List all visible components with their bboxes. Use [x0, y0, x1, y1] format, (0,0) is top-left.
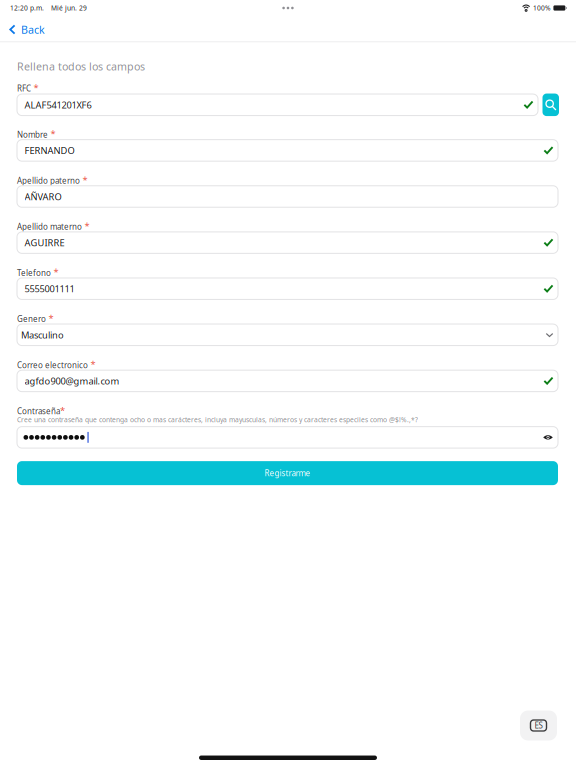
staticText: *: [82, 174, 87, 186]
button[interactable]: AÑVARO: [17, 186, 558, 207]
button[interactable]: agfdo900@gmail.com: [17, 370, 558, 392]
button[interactable]: [17, 427, 558, 448]
staticText: agfdo900@gmail.com: [24, 375, 119, 387]
staticText: Telefono: [17, 267, 51, 278]
staticText: AGUIRRE: [24, 236, 64, 249]
staticText: *: [53, 266, 58, 278]
staticText: Apellido materno: [17, 221, 82, 232]
staticText: Cree una contraseña que contenga ocho o …: [17, 415, 418, 424]
button[interactable]: AGUIRRE: [17, 232, 558, 253]
staticText: Nombre: [17, 129, 48, 140]
staticText: *: [48, 312, 53, 324]
staticText: 100%: [533, 4, 551, 12]
staticText: RFC: [17, 83, 31, 94]
staticText: Back: [21, 22, 45, 37]
staticText: Genero: [17, 314, 46, 324]
staticText: *: [33, 81, 38, 94]
staticText: Registrarme: [264, 468, 310, 478]
button[interactable]: Masculino: [17, 324, 558, 346]
button[interactable]: Cambiar idioma del teclado: [520, 710, 557, 740]
staticText: Apellido paterno: [17, 175, 80, 186]
staticText: Contraseña: [17, 406, 60, 416]
button[interactable]: FERNANDO: [17, 140, 558, 161]
button[interactable]: ALAF541201XF6: [17, 94, 538, 116]
staticText: ES: [534, 720, 542, 731]
staticText: *: [50, 127, 55, 140]
staticText: Mié jun. 29: [51, 4, 87, 12]
button[interactable]: Back: [0, 16, 55, 41]
staticText: *: [60, 404, 65, 416]
staticText: *: [84, 220, 89, 232]
button[interactable]: Buscar RFC: [542, 94, 559, 116]
staticText: 12:20 p.m.: [10, 4, 44, 12]
staticText: *: [90, 358, 95, 370]
staticText: Rellena todos los campos: [17, 59, 145, 74]
staticText: FERNANDO: [24, 144, 74, 157]
staticText: AÑVARO: [24, 190, 61, 203]
button[interactable]: Registrarme: [17, 461, 558, 485]
button[interactable]: 5555001111: [17, 278, 558, 299]
staticText: ALAF541201XF6: [24, 99, 91, 111]
staticText: Masculino: [21, 329, 64, 341]
staticText: 5555001111: [24, 282, 74, 295]
staticText: Correo electronico: [17, 360, 88, 370]
